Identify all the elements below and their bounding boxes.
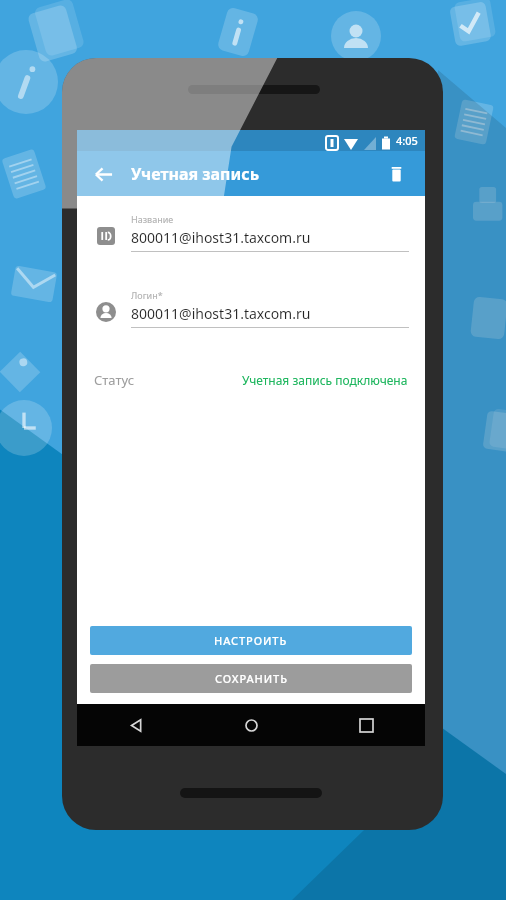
button[interactable]: Удалить	[377, 155, 415, 193]
staticText: 800011@ihost31.taxcom.ru	[131, 304, 311, 323]
button[interactable]: Логин*	[90, 289, 409, 328]
button[interactable]: Название	[90, 213, 409, 252]
button[interactable]: Последние	[349, 708, 383, 742]
staticText: Название	[131, 213, 174, 225]
button[interactable]: Назад	[119, 708, 153, 742]
staticText: Учетная запись подключена	[242, 372, 408, 388]
staticText: Логин*	[131, 289, 163, 301]
staticText: 800011@ihost31.taxcom.ru	[131, 228, 311, 247]
staticText: 4:05	[396, 133, 418, 148]
staticText: Статус	[94, 371, 135, 389]
staticText: НАСТРОИТЬ	[214, 633, 288, 648]
button[interactable]: Домой	[234, 708, 268, 742]
button[interactable]: СОХРАНИТЬ	[90, 664, 412, 693]
button[interactable]: НАСТРОИТЬ	[90, 626, 412, 655]
staticText: Учетная запись	[131, 163, 377, 185]
button[interactable]: Назад	[84, 155, 122, 193]
staticText: СОХРАНИТЬ	[215, 671, 288, 686]
